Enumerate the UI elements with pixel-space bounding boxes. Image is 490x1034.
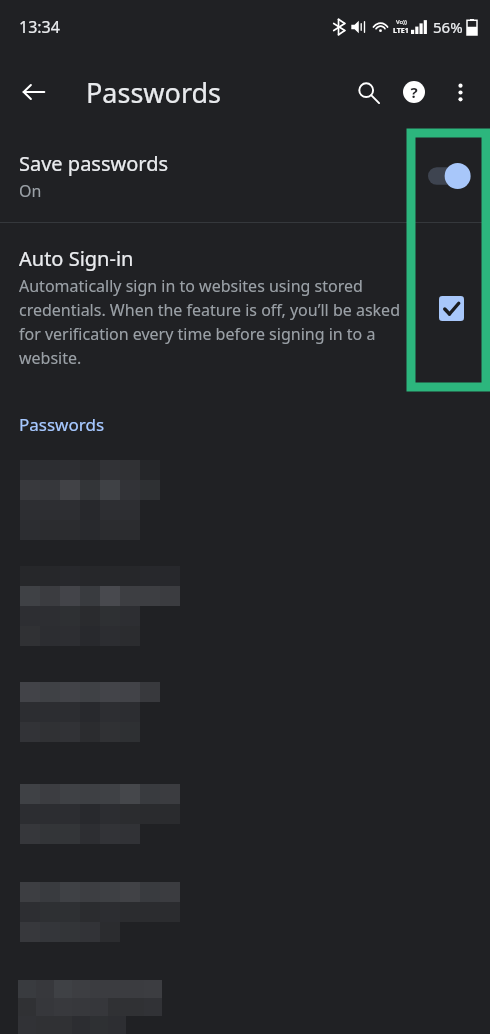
button[interactable]: Navigate up — [10, 68, 58, 116]
button[interactable]: More options — [437, 69, 483, 115]
staticText: Vo)) — [396, 18, 407, 26]
staticText: Passwords — [86, 74, 222, 111]
button[interactable]: Help — [391, 69, 437, 115]
staticText: Save passwords — [19, 150, 169, 177]
staticText: 56% — [433, 17, 463, 37]
staticText: LTE1 — [393, 26, 409, 36]
button[interactable]: Saved password entry — [0, 980, 490, 1034]
button[interactable]: Auto Sign-in — [0, 223, 490, 393]
staticText: ? — [410, 82, 418, 102]
button[interactable]: Saved password entry — [0, 882, 490, 942]
button[interactable]: Save passwords switch, on — [412, 130, 490, 222]
staticText: Auto Sign-in — [19, 245, 134, 272]
staticText: On — [19, 180, 42, 202]
staticText: 13:34 — [19, 16, 60, 38]
button[interactable]: Saved password entry — [0, 460, 490, 540]
button[interactable]: Search — [345, 69, 391, 115]
staticText: Automatically sign in to websites using … — [19, 275, 410, 369]
button[interactable]: Saved password entry — [0, 784, 490, 844]
button[interactable]: Save passwords — [0, 130, 490, 222]
button[interactable]: Saved password entry — [0, 682, 490, 742]
button[interactable]: Auto Sign-in checkbox, checked — [412, 223, 490, 393]
button[interactable]: Saved password entry — [0, 566, 490, 646]
staticText: Passwords — [19, 413, 105, 436]
